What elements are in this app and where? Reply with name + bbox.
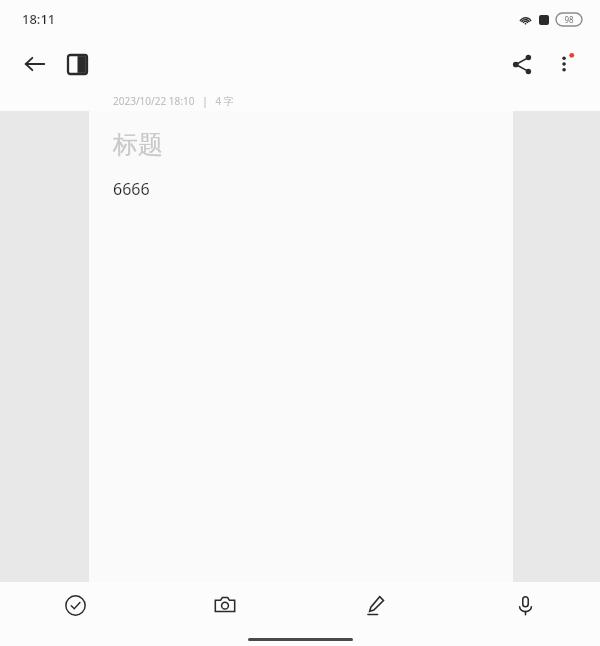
button[interactable]: Toggle theme [56, 43, 98, 85]
button[interactable]: Todo list [0, 582, 150, 628]
button[interactable]: Voice input [450, 582, 600, 628]
button[interactable]: Back [14, 43, 56, 85]
staticText: 标题 [113, 129, 163, 160]
button[interactable]: Camera [150, 582, 300, 628]
button[interactable]: More options [544, 42, 588, 86]
staticText: 6666 [113, 178, 150, 200]
button[interactable]: Share [500, 42, 544, 86]
staticText: 18:11 [22, 10, 56, 28]
staticText: 98 [564, 14, 574, 25]
staticText: 2023/10/22 18:10 | 4 字 [113, 94, 234, 108]
button[interactable]: Draw [300, 582, 450, 628]
